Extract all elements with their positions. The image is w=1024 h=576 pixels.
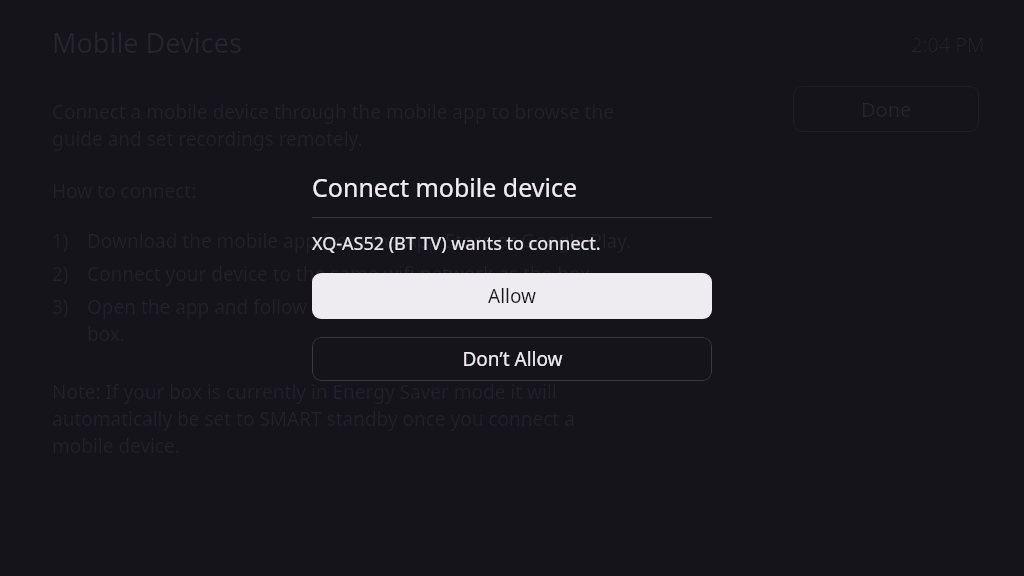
staticText: Download the mobile app from the App Sto… <box>87 228 632 254</box>
staticText: Don’t Allow <box>462 346 563 372</box>
button[interactable]: Allow <box>312 273 712 319</box>
button[interactable]: Done <box>793 86 979 132</box>
staticText: Mobile Devices <box>52 24 242 61</box>
staticText: 3) <box>52 294 87 320</box>
staticText: 2) <box>52 261 87 287</box>
staticText: Connect mobile device <box>312 170 578 204</box>
staticText: XQ-AS52 (BT TV) wants to connect. <box>312 231 601 256</box>
button[interactable]: Don’t Allow <box>312 337 712 381</box>
staticText: Connect your device to the same wifi net… <box>87 261 596 287</box>
staticText: 2:04 PM <box>911 31 985 58</box>
staticText: Connect a mobile device through the mobi… <box>52 99 614 152</box>
staticText: How to connect: <box>52 178 197 204</box>
staticText: Open the app and follow the instructions… <box>87 294 593 347</box>
staticText: Done <box>861 96 912 123</box>
staticText: Allow <box>488 283 536 309</box>
staticText: Note: If your box is currently in Energy… <box>52 379 575 459</box>
